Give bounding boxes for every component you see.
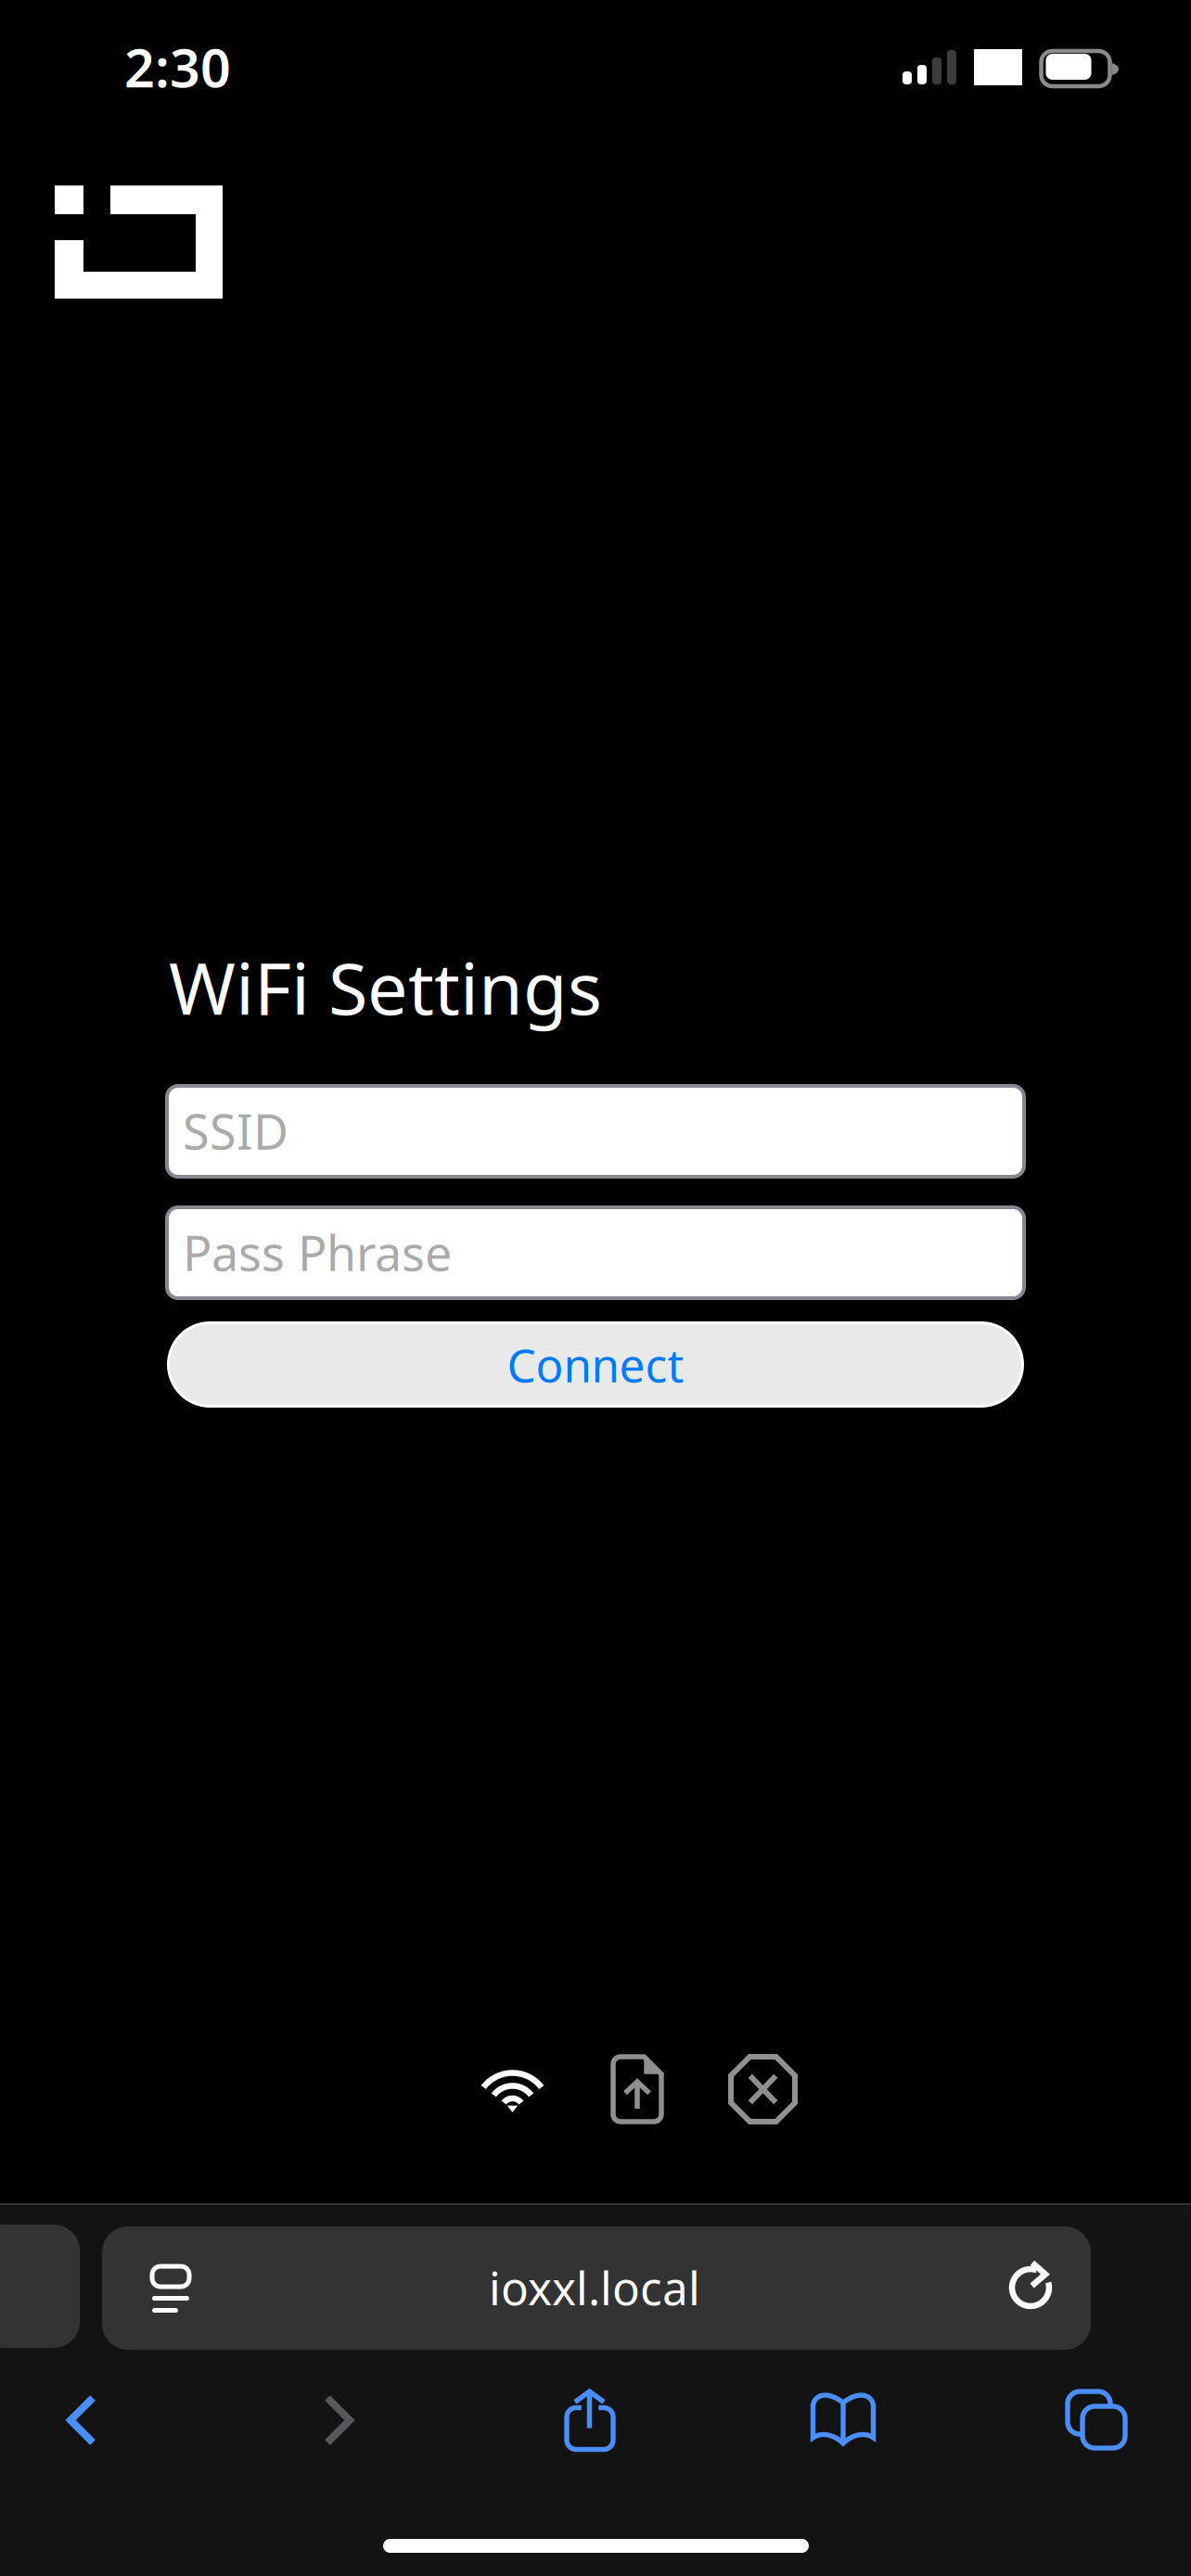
staticText: WiFi Settings bbox=[169, 939, 602, 1035]
button[interactable]: ioxxl.local bbox=[102, 2226, 1091, 2350]
button[interactable]: Pass Phrase bbox=[167, 1207, 1024, 1298]
button[interactable]: Share bbox=[499, 2347, 675, 2468]
button[interactable]: Tabs bbox=[998, 2350, 1174, 2470]
staticText: Pass Phrase bbox=[183, 1220, 452, 1284]
staticText: 2:30 bbox=[124, 32, 231, 102]
staticText: ioxxl.local bbox=[489, 2257, 700, 2318]
staticText: Connect bbox=[507, 1334, 684, 1395]
button[interactable]: SSID bbox=[167, 1086, 1024, 1177]
button[interactable]: Forward bbox=[250, 2360, 427, 2480]
button[interactable]: Connect bbox=[167, 1321, 1024, 1408]
staticText: SSID bbox=[183, 1099, 288, 1163]
button[interactable]: Back bbox=[0, 2360, 170, 2480]
button[interactable]: Bookmarks bbox=[755, 2359, 931, 2480]
